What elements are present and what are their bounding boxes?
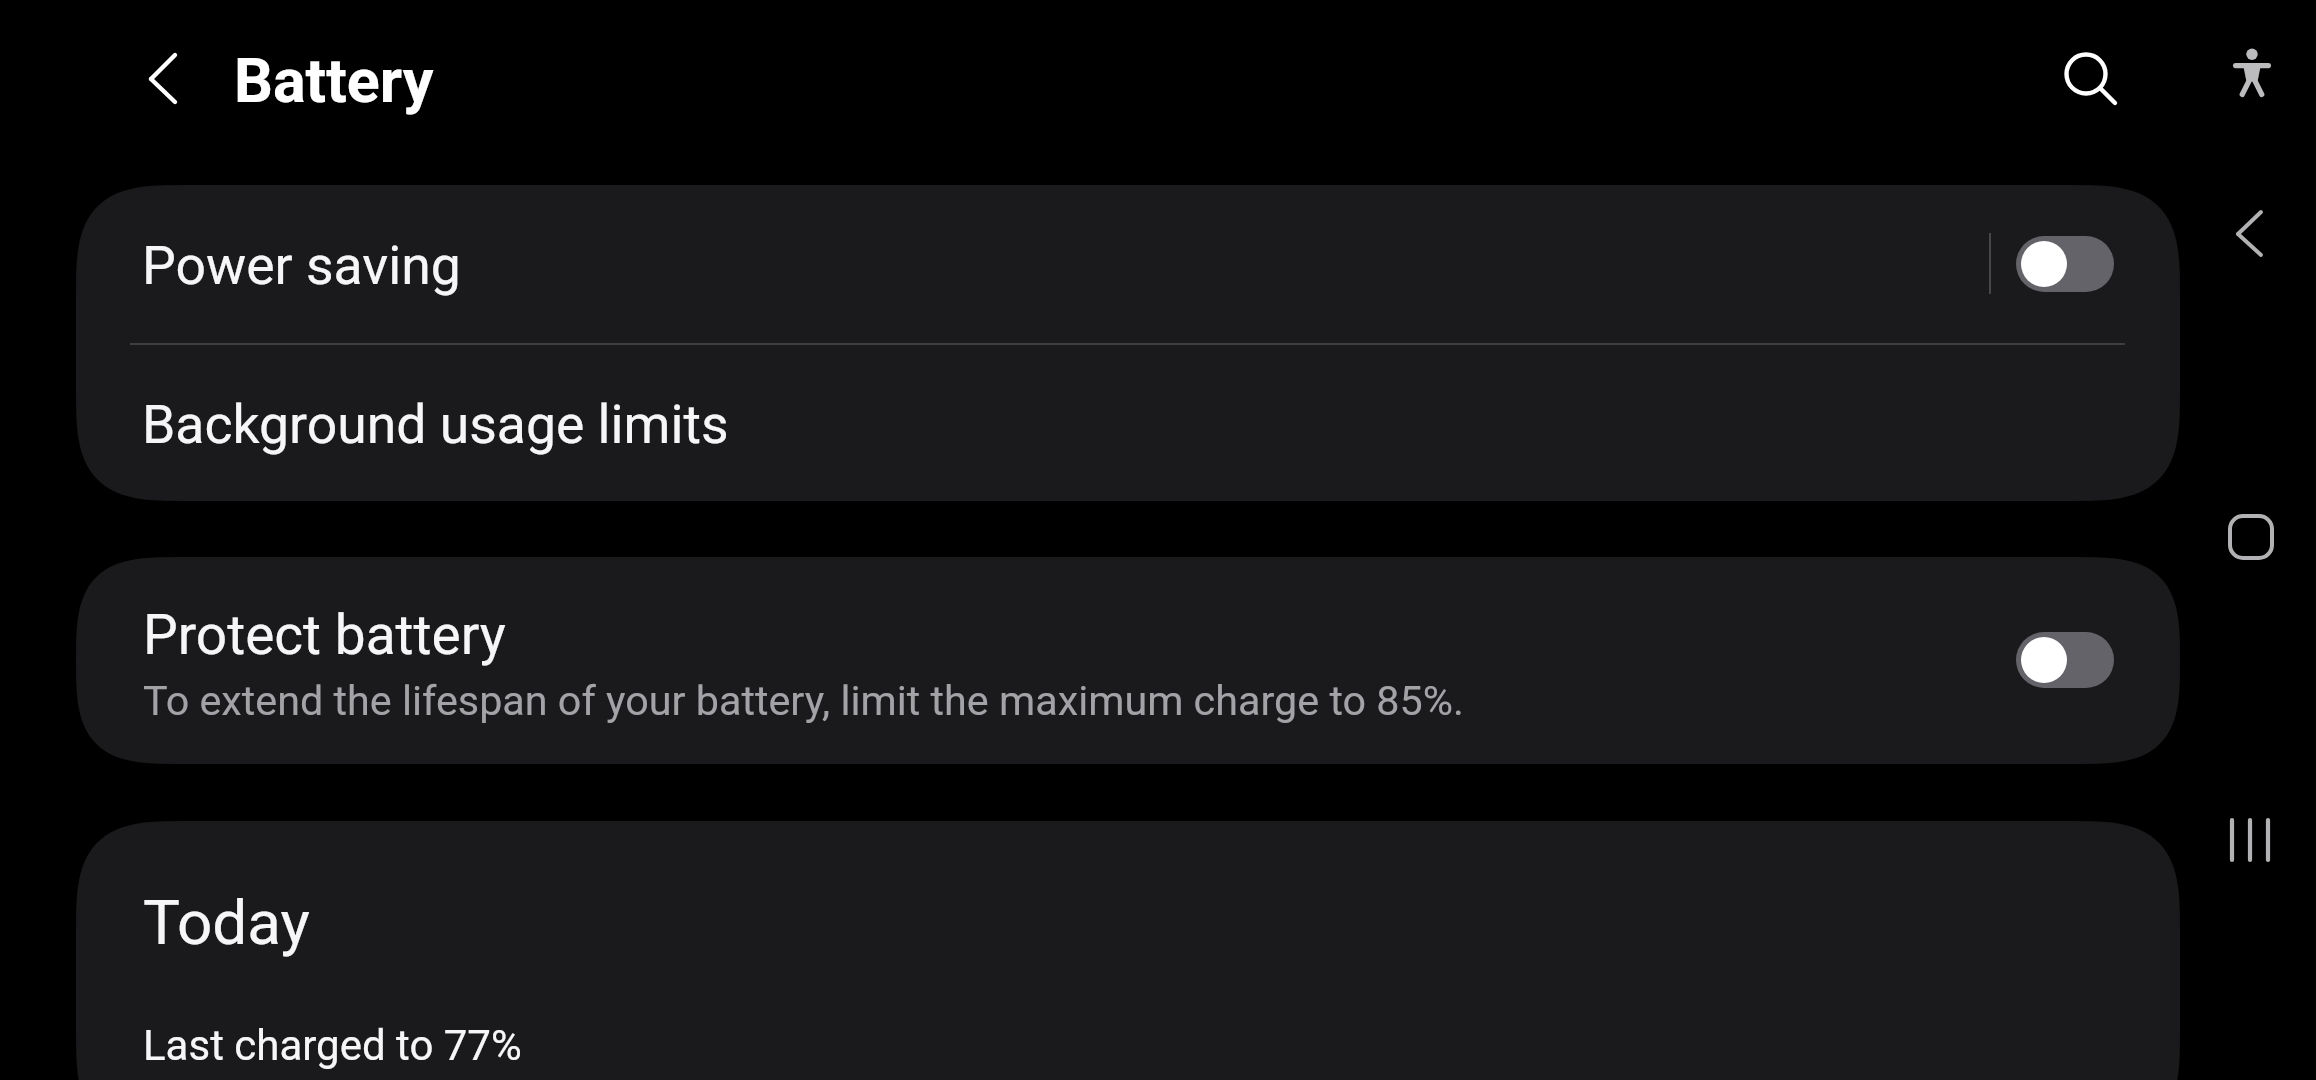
staticText: To extend the lifespan of your battery, …: [143, 677, 1464, 725]
button[interactable]: Protect battery: [2016, 632, 2114, 688]
staticText: Battery: [234, 45, 434, 116]
staticText: Background usage limits: [142, 393, 729, 456]
staticText: Protect battery: [143, 603, 506, 667]
button[interactable]: [76, 557, 2180, 764]
button[interactable]: [76, 185, 2180, 344]
button[interactable]: [76, 345, 2180, 501]
button[interactable]: Back: [2209, 194, 2289, 274]
staticText: Last charged to 77%: [143, 1021, 522, 1070]
button[interactable]: Recent apps: [2210, 799, 2290, 879]
button[interactable]: Power saving: [2016, 236, 2114, 292]
staticText: Power saving: [142, 234, 461, 297]
staticText: Today: [143, 886, 310, 959]
button[interactable]: Home: [2210, 496, 2290, 576]
button[interactable]: Accessibility: [2212, 33, 2292, 113]
button[interactable]: Search: [2046, 34, 2126, 114]
button[interactable]: Navigate up: [123, 39, 203, 119]
